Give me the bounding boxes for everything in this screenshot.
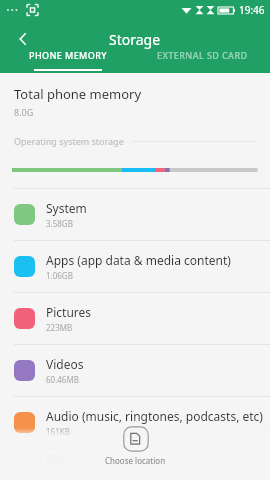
button[interactable]: Audio (music, ringtones, podcasts, etc): [0, 397, 270, 448]
staticText: System: [46, 200, 87, 216]
staticText: 161KB: [46, 426, 70, 437]
button[interactable]: Pictures: [0, 293, 270, 344]
staticText: PHONE MEMORY: [29, 49, 107, 61]
staticText: Pictures: [46, 304, 92, 320]
button[interactable]: EXTERNAL SD CARD: [135, 49, 270, 73]
staticText: Storage: [109, 30, 161, 49]
staticText: 8.0G: [14, 106, 34, 118]
staticText: 223MB: [46, 322, 73, 333]
button[interactable]: Back: [8, 24, 38, 54]
staticText: 1.06GB: [46, 270, 73, 281]
button[interactable]: Choose location: [105, 426, 166, 466]
staticText: Audio (music, ringtones, podcasts, etc): [46, 408, 263, 424]
staticText: 3.58GB: [46, 218, 73, 229]
staticText: 19:46: [239, 3, 265, 17]
button[interactable]: Apps (app data & media content): [0, 241, 270, 292]
button[interactable]: Videos: [0, 345, 270, 396]
staticText: Operating system storage: [14, 135, 124, 147]
staticText: Choose location: [105, 455, 166, 466]
button[interactable]: Misc: [0, 449, 270, 480]
staticText: Total phone memory: [14, 85, 142, 103]
staticText: 60.46MB: [46, 374, 79, 385]
staticText: Apps (app data & media content): [46, 252, 231, 268]
staticText: Videos: [46, 356, 84, 372]
button[interactable]: System: [0, 189, 270, 240]
button[interactable]: PHONE MEMORY: [0, 49, 135, 73]
staticText: EXTERNAL SD CARD: [157, 49, 248, 61]
